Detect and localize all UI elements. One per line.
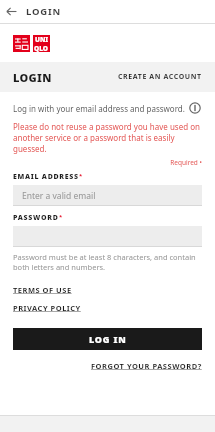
staticText: PRIVACY POLICY [13,303,81,313]
staticText: TERMS OF USE [13,285,72,295]
staticText: PASSWORD [13,213,59,223]
button[interactable]: Back [0,0,23,23]
button[interactable]: Enter a valid email [13,185,202,206]
button[interactable]: FORGOT YOUR PASSWORD? [91,361,202,371]
button[interactable] [13,226,202,247]
staticText: * [79,172,83,180]
staticText: QLO [34,44,49,52]
button[interactable]: CREATE AN ACCOUNT [118,72,202,82]
staticText: Please do not reuse a password you have … [13,121,202,154]
staticText: UNI [35,35,49,44]
button[interactable]: Information [188,101,202,115]
button[interactable]: PRIVACY POLICY [13,303,81,313]
staticText: Required • [13,158,202,167]
staticText: FORGOT YOUR PASSWORD? [91,361,202,371]
staticText: Enter a valid email [22,190,96,202]
staticText: Password must be at least 8 characters, … [13,252,202,272]
staticText: * [59,213,63,221]
button[interactable]: TERMS OF USE [13,285,72,295]
staticText: Log in with your email address and passw… [13,103,185,114]
button[interactable]: LOG IN [13,328,202,350]
staticText: LOGIN [26,5,61,18]
staticText: LOGIN [13,70,52,85]
staticText: CREATE AN ACCOUNT [118,72,202,82]
staticText: LOG IN [89,333,127,345]
staticText: EMAIL ADDRESS [13,172,79,182]
